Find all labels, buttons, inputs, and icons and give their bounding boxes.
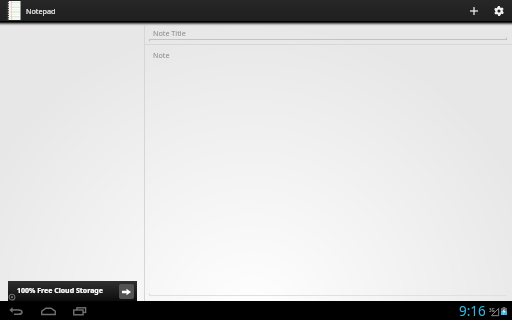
button[interactable]: Add note xyxy=(461,0,486,21)
button[interactable]: Home xyxy=(37,301,59,320)
button[interactable]: Recent apps xyxy=(69,301,91,320)
staticText: Notepad xyxy=(26,6,56,16)
staticText: 3G xyxy=(489,307,495,313)
staticText: 9:16 xyxy=(459,302,486,320)
button[interactable]: Back xyxy=(5,301,27,320)
staticText: Note xyxy=(153,50,170,60)
other: Open ad xyxy=(119,284,134,299)
staticText: Note Title xyxy=(153,28,186,38)
button[interactable]: Settings xyxy=(486,0,511,21)
staticText: 100% Free Cloud Storage xyxy=(17,286,103,296)
button[interactable]: 100% Free Cloud Storage xyxy=(8,281,137,301)
